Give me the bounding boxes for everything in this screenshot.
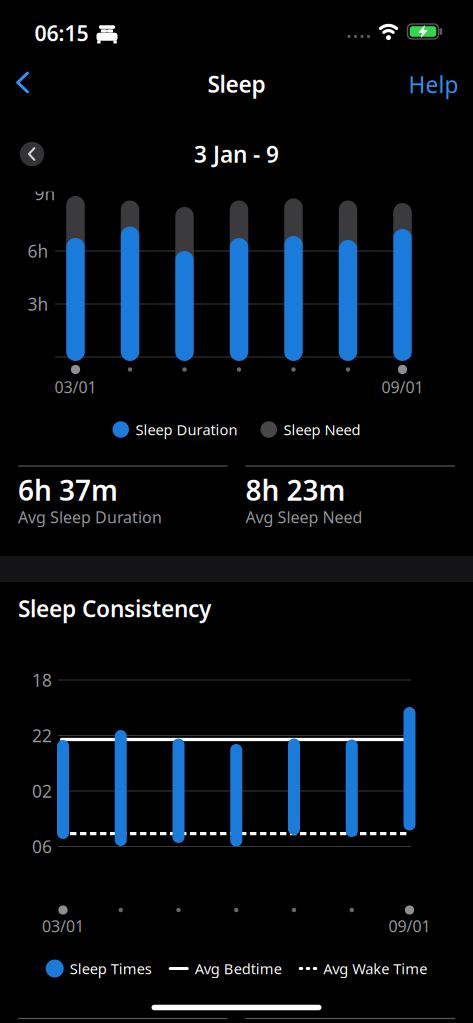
button[interactable]: Help (408, 69, 458, 99)
staticText: 06:15 (34, 19, 88, 47)
staticText: 6h (27, 239, 48, 262)
staticText: Avg Sleep Need (245, 506, 362, 528)
staticText: 3h (27, 292, 48, 315)
button[interactable]: Previous week (20, 142, 44, 166)
staticText: 09/01 (381, 376, 423, 398)
staticText: Avg Sleep Duration (18, 506, 162, 528)
staticText: Help (408, 69, 458, 99)
button[interactable]: Back (16, 71, 29, 93)
staticText: 03/01 (54, 376, 96, 398)
staticText: Avg Wake Time (323, 959, 427, 978)
staticText: 6h 37m (18, 471, 118, 509)
staticText: Sleep Need (283, 420, 360, 439)
staticText: Sleep Times (70, 959, 152, 978)
staticText: 8h 23m (245, 471, 345, 509)
staticText: 09/01 (388, 915, 430, 937)
staticText: 03/01 (42, 915, 84, 937)
staticText: 02 (32, 779, 52, 802)
staticText: 22 (32, 724, 52, 747)
staticText: Sleep Duration (135, 420, 237, 439)
staticText: 18 (32, 668, 52, 691)
staticText: Sleep Consistency (18, 593, 211, 623)
staticText: 3 Jan - 9 (194, 139, 279, 169)
staticText: 06 (32, 835, 52, 858)
staticText: 9h (34, 182, 55, 205)
staticText: Avg Bedtime (195, 959, 282, 978)
staticText: Sleep (207, 69, 265, 99)
